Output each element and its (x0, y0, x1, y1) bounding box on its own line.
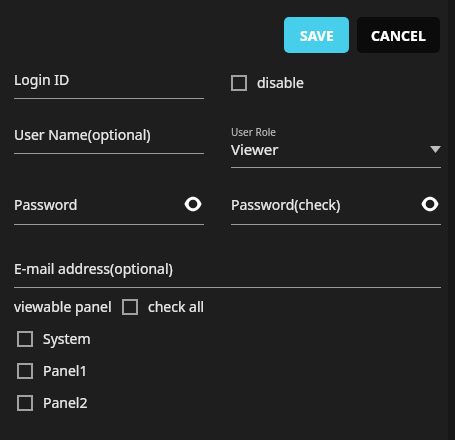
staticText: CANCEL (371, 26, 426, 45)
button[interactable]: User Role (231, 125, 441, 168)
button[interactable]: Panel1 (17, 361, 88, 380)
button[interactable]: Show password (419, 193, 441, 215)
button[interactable]: CANCEL (357, 17, 440, 53)
button[interactable]: check all (122, 297, 205, 316)
button[interactable]: Password (14, 193, 204, 225)
staticText: User Name(optional) (14, 125, 204, 144)
button[interactable]: disable (231, 73, 304, 92)
staticText: Panel1 (43, 361, 88, 380)
staticText: SAVE (300, 26, 334, 45)
staticText: E-mail address(optional) (14, 259, 441, 278)
staticText: User Role (231, 125, 276, 139)
button[interactable]: Password(check) (231, 193, 441, 225)
staticText: Password (14, 195, 182, 214)
button[interactable]: E-mail address(optional) (14, 259, 441, 288)
staticText: System (43, 329, 91, 348)
button[interactable]: System (17, 329, 91, 348)
staticText: disable (257, 73, 304, 92)
button[interactable]: Show password (182, 193, 204, 215)
staticText: check all (148, 297, 205, 316)
button[interactable]: Panel2 (17, 393, 88, 412)
staticText: viewable panel (14, 297, 112, 316)
button[interactable]: User Name(optional) (14, 125, 204, 154)
staticText: Viewer (231, 139, 430, 159)
staticText: Password(check) (231, 195, 419, 214)
staticText: Login ID (14, 70, 204, 89)
button[interactable]: Login ID (14, 70, 204, 99)
button[interactable]: SAVE (284, 17, 349, 53)
staticText: Panel2 (43, 393, 88, 412)
